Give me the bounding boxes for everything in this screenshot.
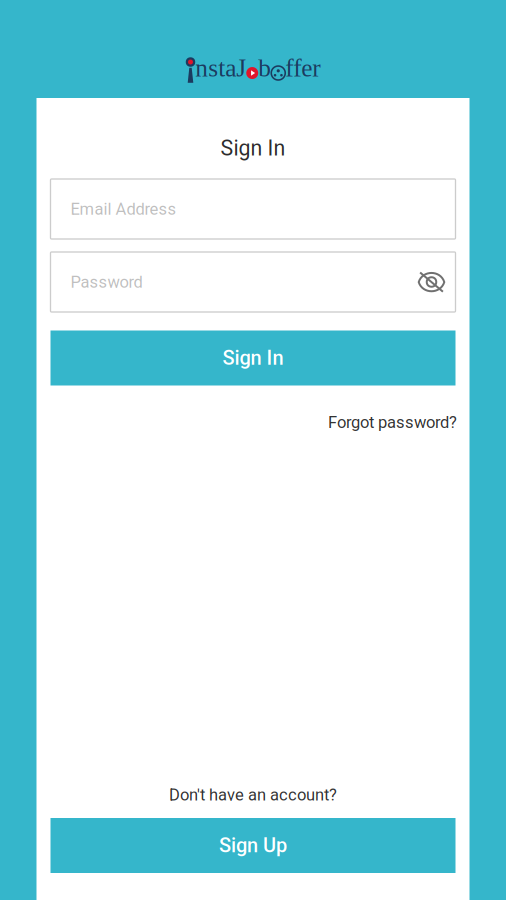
staticText: Email Address (70, 199, 176, 219)
staticText: Password (70, 272, 142, 292)
button[interactable]: Show password (417, 271, 445, 292)
button[interactable]: Sign In (50, 330, 455, 385)
staticText: Don't have an account? (169, 785, 337, 805)
staticText: b (258, 54, 271, 82)
staticText: Sign In (220, 136, 285, 161)
staticText: ffer (285, 54, 320, 82)
button[interactable]: Forgot password? (328, 413, 457, 432)
button[interactable]: Sign Up (50, 818, 455, 873)
staticText: Forgot password? (328, 413, 457, 432)
staticText: nsta (195, 54, 236, 82)
staticText: Sign In (222, 346, 283, 370)
staticText: J (236, 54, 246, 82)
staticText: Sign Up (219, 834, 287, 857)
